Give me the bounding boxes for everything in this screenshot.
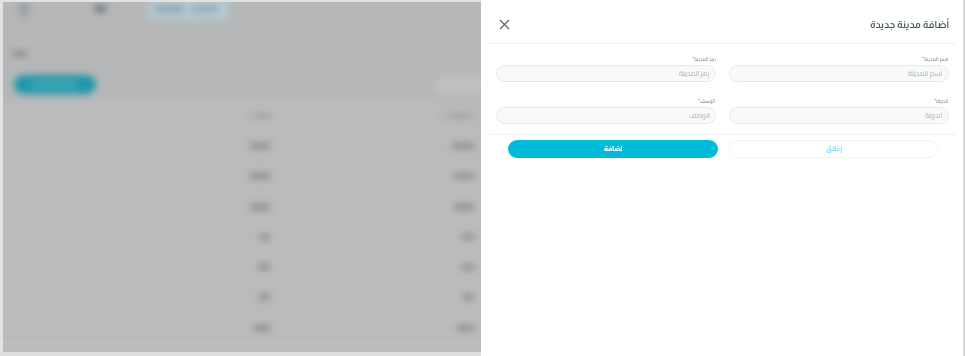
button[interactable]: الدولة — [729, 107, 949, 124]
staticText: *الوصف — [698, 96, 716, 105]
button[interactable]: رمز المدينة — [496, 65, 716, 82]
staticText: اضافة — [604, 145, 623, 153]
staticText: إغلاق — [826, 145, 843, 153]
staticText: *الدولة — [934, 96, 949, 105]
staticText: أضافة مدينة جديدة — [870, 19, 950, 30]
button[interactable]: Close — [491, 11, 517, 37]
button[interactable]: اضافة — [508, 140, 718, 158]
staticText: *رمز المدينة — [692, 54, 716, 63]
staticText: اسم المدينة — [908, 67, 943, 80]
button[interactable]: اسم المدينة — [729, 65, 949, 82]
staticText: الوصف — [689, 109, 710, 122]
staticText: الدولة — [925, 109, 943, 122]
staticText: رمز المدينة — [679, 67, 710, 80]
button[interactable]: إغلاق — [729, 140, 939, 158]
button[interactable]: الوصف — [496, 107, 716, 124]
staticText: *اسم المدينة — [922, 54, 949, 63]
